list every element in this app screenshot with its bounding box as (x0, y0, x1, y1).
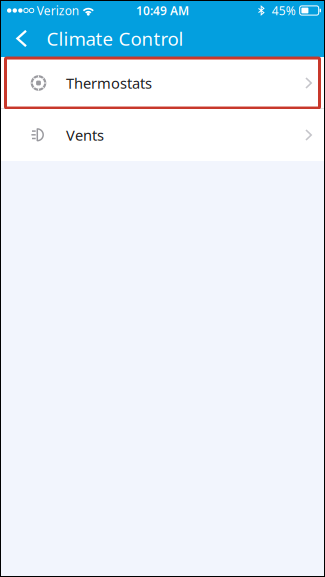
staticText: Thermostats (66, 73, 152, 93)
button[interactable]: Thermostats (1, 57, 324, 109)
staticText: 45% (272, 2, 296, 18)
staticText: Verizon (37, 2, 79, 18)
button[interactable]: Vents (1, 109, 324, 161)
staticText: Climate Control (46, 26, 183, 51)
button[interactable]: Back (1, 19, 36, 57)
staticText: Vents (66, 125, 104, 145)
staticText: 10:49 AM (136, 2, 189, 18)
